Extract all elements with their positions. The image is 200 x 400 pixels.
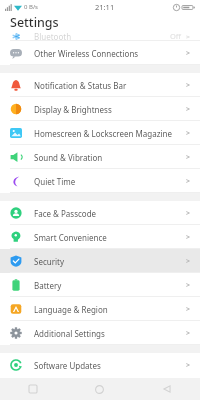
staticText: 0 B/s [24, 3, 38, 11]
button[interactable]: Home [66, 378, 133, 400]
staticText: Software Updates [34, 360, 101, 371]
staticText: Additional Settings [34, 328, 105, 339]
button[interactable]: Language & Region [0, 297, 200, 321]
button[interactable]: Security [0, 249, 200, 273]
staticText: Off [170, 31, 182, 40]
button[interactable]: Quiet Time [0, 169, 200, 193]
staticText: Homescreen & Lockscreen Magazine [34, 128, 172, 139]
button[interactable]: Sound & Vibration [0, 145, 200, 169]
button[interactable]: Other Wireless Connections [0, 41, 200, 65]
button[interactable]: Smart Convenience [0, 225, 200, 249]
button[interactable]: Homescreen & Lockscreen Magazine [0, 121, 200, 145]
staticText: Other Wireless Connections [34, 48, 139, 59]
staticText: Security [34, 256, 65, 267]
staticText: Smart Convenience [34, 232, 107, 243]
staticText: Quiet Time [34, 176, 76, 187]
button[interactable]: Back [133, 378, 200, 400]
staticText: Sound & Vibration [34, 152, 103, 163]
button[interactable]: Additional Settings [0, 321, 200, 345]
button[interactable]: Face & Passcode [0, 201, 200, 225]
staticText: Notification & Status Bar [34, 80, 127, 91]
button[interactable]: Display & Brightness [0, 97, 200, 121]
staticText: Bluetooth [34, 31, 72, 40]
staticText: Face & Passcode [34, 208, 97, 219]
staticText: Battery [34, 280, 62, 291]
staticText: Settings [10, 14, 59, 31]
staticText: Display & Brightness [34, 104, 112, 115]
button[interactable]: Battery [0, 273, 200, 297]
staticText: Language & Region [34, 304, 108, 315]
button[interactable]: Recent apps [0, 378, 66, 400]
button[interactable]: Notification & Status Bar [0, 73, 200, 97]
staticText: 21:11 [95, 2, 115, 12]
button[interactable]: Software Updates [0, 353, 200, 377]
